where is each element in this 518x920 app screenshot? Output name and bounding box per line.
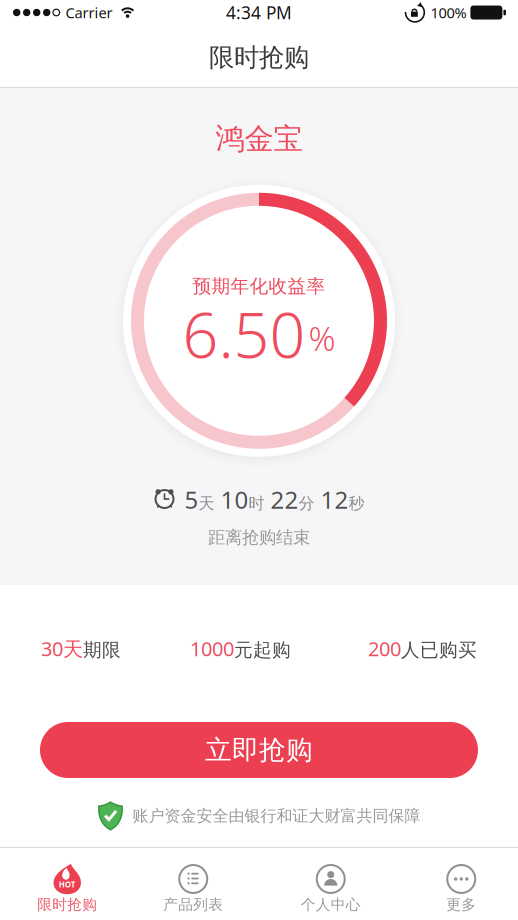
- staticText: 个人中心: [301, 895, 361, 913]
- staticText: HOT: [59, 879, 76, 890]
- staticText: %: [308, 316, 335, 360]
- button[interactable]: 个人中心: [266, 846, 395, 913]
- button[interactable]: 产品列表: [128, 846, 258, 913]
- staticText: 5: [184, 484, 198, 515]
- staticText: 10: [214, 484, 248, 515]
- staticText: 天: [198, 494, 214, 513]
- staticText: 分: [298, 494, 314, 513]
- staticText: 元起购: [234, 639, 291, 661]
- staticText: 账户资金安全由银行和证大财富共同保障: [132, 806, 420, 826]
- staticText: 更多: [446, 895, 476, 913]
- staticText: 距离抢购结束: [208, 527, 310, 548]
- staticText: 秒: [348, 494, 364, 513]
- staticText: 预期年化收益率: [192, 275, 325, 298]
- staticText: 4:34 PM: [226, 1, 292, 24]
- button[interactable]: HOT: [2, 846, 132, 913]
- staticText: 产品列表: [163, 895, 223, 913]
- staticText: Carrier: [66, 3, 113, 22]
- staticText: 22: [264, 484, 298, 515]
- staticText: 人已购买: [401, 639, 477, 661]
- staticText: 时: [248, 494, 264, 513]
- staticText: 立即抢购: [205, 734, 313, 766]
- button[interactable]: 立即抢购: [40, 722, 478, 778]
- staticText: 1000: [190, 635, 234, 662]
- staticText: 30天: [41, 635, 83, 662]
- button[interactable]: 更多: [396, 846, 518, 913]
- staticText: 200: [368, 635, 401, 662]
- staticText: 鸿金宝: [215, 121, 302, 157]
- staticText: 12: [314, 484, 348, 515]
- staticText: 限时抢购: [209, 42, 309, 73]
- staticText: 100%: [430, 3, 466, 22]
- staticText: 限时抢购: [37, 895, 97, 913]
- staticText: 期限: [83, 639, 121, 661]
- staticText: 6.50: [182, 292, 305, 375]
